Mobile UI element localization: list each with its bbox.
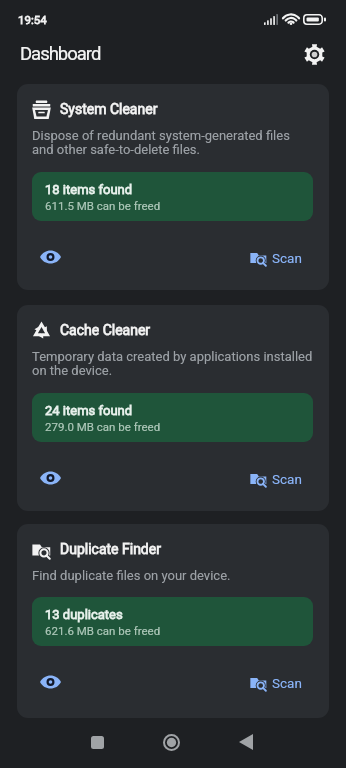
staticText: 279.0 MB can be freed: [45, 420, 161, 433]
button[interactable]: 13 duplicates: [32, 597, 313, 646]
staticText: 611.5 MB can be freed: [45, 199, 161, 212]
button[interactable]: 18 items found: [32, 172, 313, 221]
button[interactable]: Scan: [239, 464, 313, 493]
staticText: 621.6 MB can be freed: [45, 624, 161, 637]
staticText: Scan: [272, 675, 302, 691]
button[interactable]: Preview: [32, 664, 68, 700]
staticText: Dispose of redundant system-generated fi…: [32, 128, 313, 158]
staticText: Temporary data created by applications i…: [32, 349, 313, 379]
button[interactable]: Home: [152, 723, 190, 761]
staticText: Dashboard: [20, 43, 101, 65]
button[interactable]: Recents: [78, 723, 116, 761]
staticText: Cache Cleaner: [60, 322, 151, 338]
staticText: Duplicate Finder: [60, 541, 161, 557]
button[interactable]: Duplicate Finder: [17, 524, 329, 718]
button[interactable]: 24 items found: [32, 393, 313, 442]
staticText: System Cleaner: [60, 101, 158, 117]
button[interactable]: Settings: [295, 38, 333, 70]
staticText: 24 items found: [45, 403, 133, 418]
staticText: Find duplicate files on your device.: [32, 568, 231, 583]
button[interactable]: Preview: [32, 460, 68, 496]
staticText: 13 duplicates: [45, 607, 123, 622]
button[interactable]: Scan: [239, 668, 313, 697]
staticText: 18 items found: [45, 182, 133, 197]
staticText: Scan: [272, 250, 302, 266]
button[interactable]: Preview: [32, 239, 68, 275]
staticText: Scan: [272, 471, 302, 487]
button[interactable]: Cache Cleaner: [17, 305, 329, 511]
button[interactable]: Scan: [239, 243, 313, 272]
staticText: 19:54: [18, 13, 47, 26]
button[interactable]: Back: [227, 723, 265, 761]
button[interactable]: System Cleaner: [17, 84, 329, 290]
